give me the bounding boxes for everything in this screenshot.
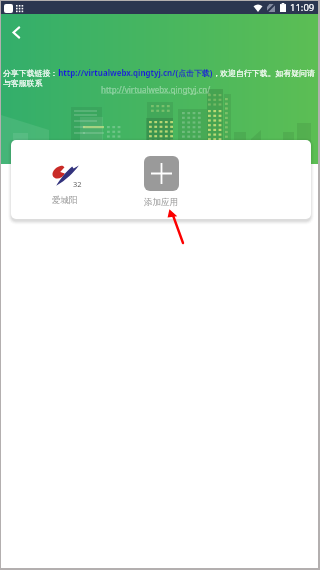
staticText: 32 xyxy=(73,179,82,189)
staticText: 11:09 xyxy=(290,1,315,14)
staticText: http://virtualwebx.qingtyj.cn/ xyxy=(101,84,211,95)
staticText: 分享下载链接：http://virtualwebx.qingtyj.cn/(点击… xyxy=(3,68,317,89)
staticText: 添加应用 xyxy=(144,197,178,208)
button[interactable]: 添加应用 xyxy=(129,140,193,208)
button[interactable]: 32 xyxy=(33,140,97,206)
staticText: 爱城阳 xyxy=(52,195,78,206)
button[interactable]: Back xyxy=(3,19,29,45)
